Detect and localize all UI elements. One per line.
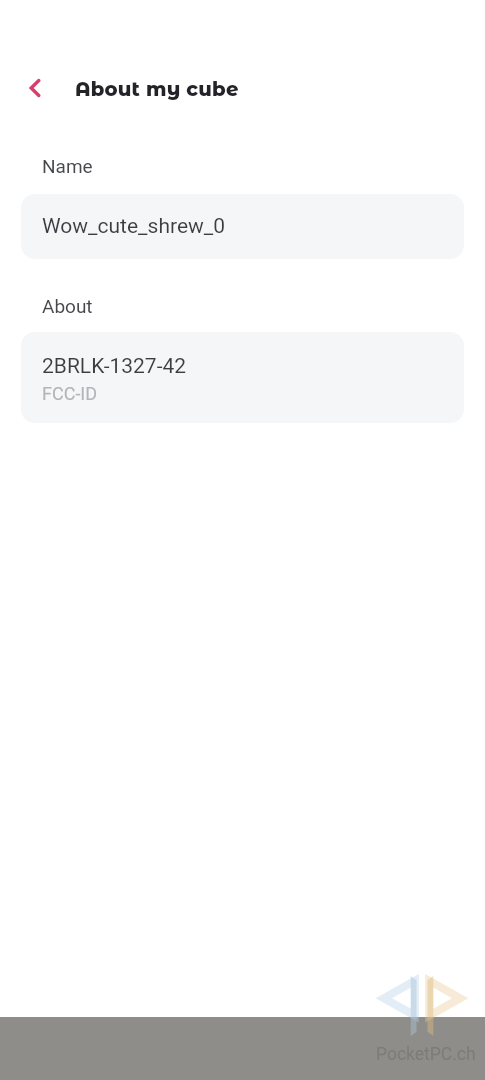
button[interactable]: Wow_cute_shrew_0 bbox=[21, 194, 464, 259]
staticText: FCC-ID bbox=[42, 383, 98, 404]
button[interactable]: Back bbox=[18, 71, 52, 105]
staticText: Name bbox=[42, 155, 93, 177]
staticText: 2BRLK-1327-42 bbox=[42, 354, 187, 379]
staticText: About my cube bbox=[75, 77, 239, 101]
staticText: Wow_cute_shrew_0 bbox=[42, 214, 226, 239]
staticText: PocketPC.ch bbox=[376, 1044, 476, 1065]
button[interactable]: 2BRLK-1327-42 bbox=[21, 332, 464, 423]
staticText: About bbox=[42, 295, 93, 317]
